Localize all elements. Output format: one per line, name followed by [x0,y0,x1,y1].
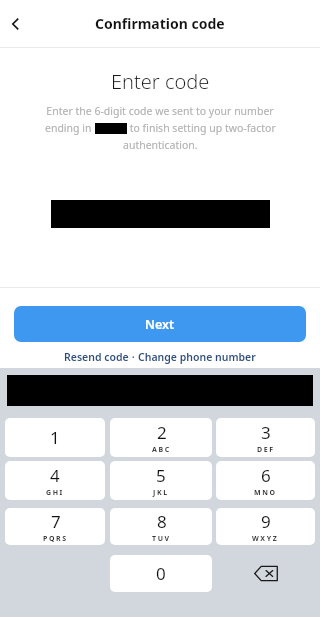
staticText: 3 [261,421,271,444]
button[interactable]: 1 [5,418,105,457]
button[interactable]: Back [2,10,30,38]
button[interactable]: Backspace [216,555,315,592]
button[interactable]: 9 [216,508,315,545]
staticText: Next [145,316,175,333]
staticText: to finish setting up two-factor [127,121,276,135]
staticText: Change phone number [138,350,256,364]
staticText: Enter code [111,68,210,95]
staticText: ABC [152,445,171,455]
staticText: DEF [257,445,275,455]
staticText: 1 [50,426,60,449]
button[interactable]: 3 [216,418,315,457]
staticText: TUV [152,534,171,544]
staticText: JKL [153,488,169,498]
staticText: 9 [261,510,271,533]
button[interactable]: 5 [110,461,212,500]
staticText: 7 [51,510,61,533]
button[interactable]: Resend code [64,350,129,364]
staticText: 8 [157,510,167,533]
staticText: Resend code [64,350,129,364]
staticText: ending in [45,121,95,135]
button[interactable]: 8 [110,508,212,545]
button[interactable]: 4 [5,461,105,500]
staticText: Enter the 6-digit code we sent to your n… [46,104,274,118]
staticText: 5 [156,464,166,487]
staticText: Confirmation code [95,14,225,33]
staticText: 2 [157,421,167,444]
button[interactable]: Change phone number [138,350,256,364]
staticText: 0 [156,562,166,585]
button[interactable]: 0 [110,555,212,592]
staticText: 6 [261,464,271,487]
button[interactable]: 2 [110,418,212,457]
staticText: MNO [254,488,277,498]
staticText: PQRS [43,534,68,544]
button[interactable]: Next [14,306,306,342]
staticText: authentication. [123,138,198,152]
staticText: 4 [50,464,60,487]
staticText: · [129,350,138,364]
staticText: GHI [46,488,64,498]
button[interactable]: 7 [5,508,105,545]
staticText: WXYZ [252,534,279,544]
button[interactable]: 6 [216,461,315,500]
